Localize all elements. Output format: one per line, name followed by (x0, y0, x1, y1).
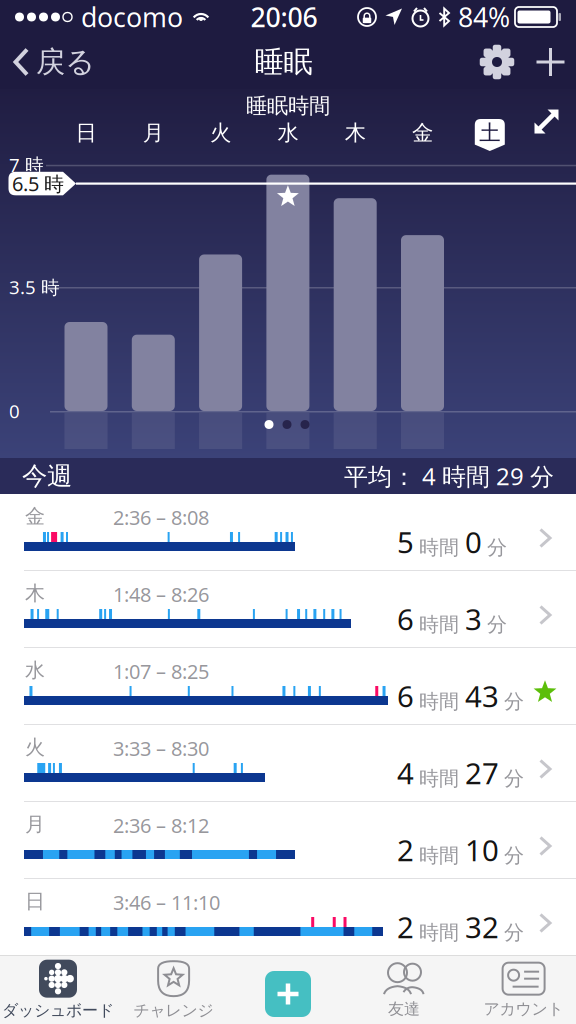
button[interactable]: 追加 (522, 39, 576, 84)
staticText: 0 (9, 399, 20, 423)
staticText: 時間 (419, 612, 459, 637)
staticText: 平均： 4 時間 29 分 (344, 460, 554, 492)
button[interactable]: 土 (456, 119, 523, 151)
staticText: 友達 (388, 999, 420, 1019)
staticText: 戻る (36, 44, 95, 80)
staticText: 分 (504, 766, 524, 791)
staticText: 時間 (419, 689, 459, 714)
staticText: 木 (25, 581, 45, 606)
staticText: 日 (75, 120, 96, 146)
button[interactable]: 火 (187, 119, 254, 151)
staticText: チャレンジ (134, 1001, 214, 1020)
staticText: 分 (504, 843, 524, 868)
staticText: 2:36 – 8:12 (113, 812, 209, 839)
staticText: 4 (397, 753, 414, 792)
button[interactable]: 金 (0, 494, 576, 570)
staticText: 時間 (419, 843, 459, 868)
button[interactable]: 戻る (0, 36, 95, 88)
staticText: 土 (479, 120, 500, 146)
staticText: 分 (487, 535, 507, 560)
staticText: 日 (25, 889, 45, 914)
staticText: 分 (504, 920, 524, 945)
button[interactable]: 設定 (472, 37, 522, 87)
staticText: 2 (397, 830, 414, 869)
staticText: 43 (465, 676, 499, 715)
staticText: 5 (397, 522, 414, 561)
staticText: 分 (487, 612, 507, 637)
staticText: 金 (25, 504, 45, 529)
staticText: 睡眠時間 (246, 93, 330, 119)
staticText: 月 (143, 120, 164, 146)
staticText: 6 (397, 599, 414, 638)
staticText: 1:48 – 8:26 (113, 581, 209, 608)
staticText: 分 (504, 689, 524, 714)
button[interactable]: 追加 (223, 962, 353, 1024)
staticText: 水 (25, 658, 45, 683)
button[interactable]: 拡大 (525, 100, 568, 143)
staticText: 20:06 (250, 0, 317, 35)
staticText: docomo (81, 0, 183, 35)
staticText: 火 (25, 735, 45, 760)
staticText: 7 時 (9, 152, 44, 177)
staticText: 時間 (419, 535, 459, 560)
staticText: 睡眠 (254, 44, 312, 80)
button[interactable]: 木 (321, 119, 389, 151)
button[interactable]: 水 (254, 119, 321, 151)
button[interactable]: チャレンジ (109, 958, 239, 1022)
staticText: 2 (397, 907, 414, 946)
staticText: 今週 (22, 460, 72, 491)
button[interactable]: 日 (52, 119, 120, 151)
staticText: 2:36 – 8:08 (113, 504, 209, 531)
staticText: 木 (345, 120, 366, 146)
staticText: 時間 (419, 766, 459, 791)
staticText: 84% (458, 0, 510, 35)
button[interactable]: 木 (0, 571, 576, 647)
staticText: 3:33 – 8:30 (113, 735, 209, 762)
button[interactable]: 火 (0, 725, 576, 801)
staticText: 3.5 時 (9, 275, 60, 299)
staticText: 6.5 時 (12, 170, 64, 197)
staticText: 27 (465, 753, 499, 792)
staticText: 時間 (419, 920, 459, 945)
staticText: 金 (412, 120, 433, 146)
button[interactable]: アカウント (459, 958, 576, 1022)
staticText: 月 (25, 812, 45, 837)
staticText: 火 (210, 120, 231, 146)
staticText: 3:46 – 11:10 (113, 889, 220, 916)
staticText: アカウント (484, 999, 564, 1019)
button[interactable]: 金 (389, 119, 456, 151)
staticText: 32 (465, 907, 499, 946)
button[interactable]: ダッシュボード (0, 958, 123, 1022)
staticText: 10 (465, 830, 499, 869)
staticText: 0 (465, 522, 482, 561)
staticText: 水 (277, 120, 298, 146)
button[interactable]: 友達 (339, 958, 469, 1022)
button[interactable]: 月 (120, 119, 187, 151)
staticText: 1:07 – 8:25 (113, 658, 209, 685)
staticText: 6 (397, 676, 414, 715)
button[interactable]: 水 (0, 648, 576, 724)
staticText: 3 (465, 599, 482, 638)
staticText: ダッシュボード (2, 1001, 114, 1020)
button[interactable]: 月 (0, 802, 576, 878)
button[interactable]: 日 (0, 879, 576, 955)
